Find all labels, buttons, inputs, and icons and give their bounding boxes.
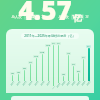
staticText: 总人次 [11,15,22,19]
staticText: 1167.9 [25,14,39,20]
staticText: 2015 [34,81,39,86]
staticText: 138 [40,51,44,54]
staticText: 2014 [28,81,33,86]
button[interactable]: More statistics [11,96,89,100]
staticText: 26 [62,73,65,76]
button[interactable]: 91 [71,42,76,88]
button[interactable]: 74 [66,42,71,88]
staticText: 56 [23,67,26,70]
button[interactable]: 2011年—2025年暑期档总票房（亿） [21,33,79,39]
button[interactable]: 163 [45,42,51,88]
button[interactable]: 总场次 [57,14,90,20]
button[interactable]: 116 [81,42,86,88]
staticText: 2011年—2025年暑期档总票房（亿） [24,34,76,38]
staticText: 2021 [66,81,71,86]
staticText: 4.57 [18,0,72,27]
button[interactable]: 174 [51,42,56,88]
staticText: 132.5 [72,14,83,20]
staticText: 2017 [46,81,51,86]
staticText: 163 [46,44,50,47]
staticText: 万 [85,15,89,19]
staticText: 2012 [16,81,21,86]
staticText: 2019 [56,83,61,88]
staticText: 119 [87,45,90,48]
button[interactable]: 124 [33,42,39,88]
staticText: 亿 [73,13,82,24]
staticText: 30 [11,72,14,75]
staticText: 2011 [10,81,15,86]
button[interactable]: 56 [21,42,27,88]
staticText: 35 [17,71,20,74]
staticText: 206 [77,70,80,73]
staticText: 2016 [40,81,45,86]
button[interactable]: 26 [61,42,66,88]
staticText: 91 [29,61,32,64]
staticText: 2022 [71,81,76,86]
staticText: 2025 [86,81,91,86]
staticText: 174 [52,42,55,45]
button[interactable]: 91 [27,42,33,88]
staticText: 74 [67,52,70,55]
button[interactable]: 总人次 [10,14,46,20]
staticText: 2024 [81,81,86,86]
staticText: 2018 [52,85,55,90]
button[interactable]: 138 [39,42,45,88]
button[interactable]: 119 [86,42,91,88]
staticText: 91 [72,63,75,66]
button[interactable]: 206 [76,42,81,88]
staticText: 124 [34,55,38,58]
staticText: 177 [57,42,60,45]
staticText: 2013 [22,81,27,86]
staticText: 116 [82,56,85,59]
staticText: 2023 [76,81,81,86]
staticText: 总场次 [58,15,69,19]
staticText: 万 [41,15,45,19]
button[interactable]: 35 [15,42,21,88]
button[interactable]: 30 [9,42,15,88]
button[interactable]: 177 [56,42,61,88]
staticText: 2020 [61,81,66,86]
